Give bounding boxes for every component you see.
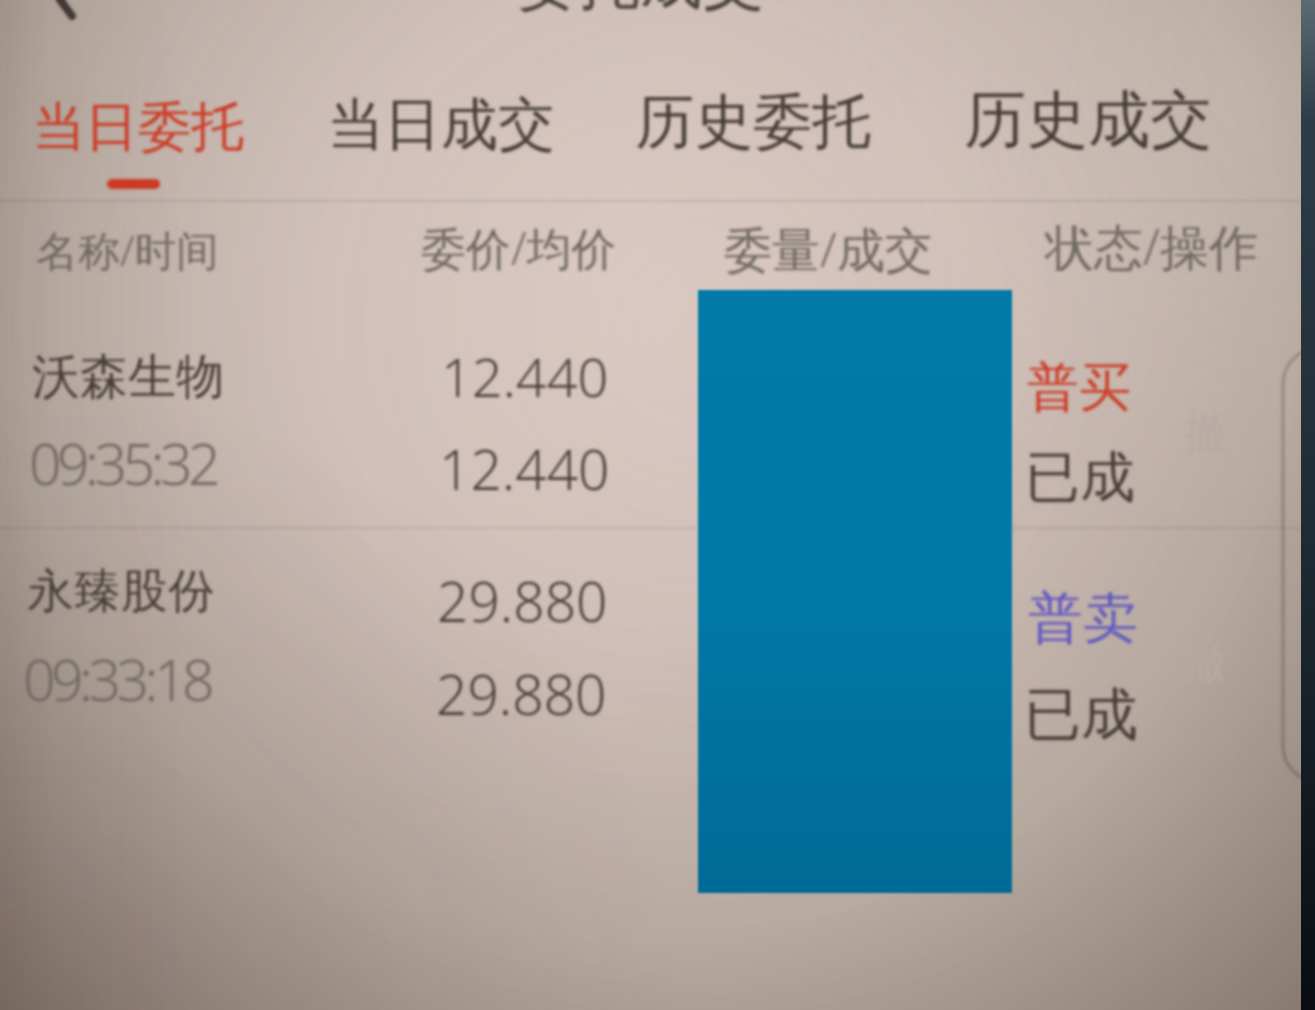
staticText: 29.880 xyxy=(436,656,607,731)
staticText: 沃森生物 xyxy=(32,347,224,407)
staticText: 状态/操作 xyxy=(1045,213,1259,280)
staticText: 委托成交 xyxy=(516,0,764,20)
staticText: 永臻股份 xyxy=(27,562,215,621)
staticText: 09:33:18 xyxy=(23,640,211,718)
button[interactable] xyxy=(0,534,1315,744)
staticText: 当日委托 xyxy=(32,94,244,161)
staticText: 委价/均价 xyxy=(421,217,617,278)
staticText: 历史委托 xyxy=(635,85,871,159)
staticText: 普卖 xyxy=(1028,584,1138,653)
staticText: 已成 xyxy=(1025,443,1135,512)
staticText: 普买 xyxy=(1027,355,1131,421)
staticText: 29.880 xyxy=(437,563,608,638)
staticText: 12.440 xyxy=(439,431,610,506)
staticText: 历史成交 xyxy=(964,81,1212,159)
button[interactable]: 历史委托 xyxy=(617,69,889,174)
staticText: 名称/时间 xyxy=(36,221,219,278)
staticText: 委量/成交 xyxy=(724,216,933,282)
button[interactable]: 当日成交 xyxy=(309,73,573,176)
staticText: 当日成交 xyxy=(327,89,555,161)
button[interactable] xyxy=(0,320,1315,525)
staticText: 12.440 xyxy=(441,339,609,413)
button[interactable]: 当日委托 xyxy=(14,78,262,177)
staticText: 09:35:32 xyxy=(29,424,217,502)
button[interactable]: Back xyxy=(8,0,88,30)
staticText: 已成 xyxy=(1024,679,1138,751)
button[interactable]: 撤 xyxy=(1174,632,1236,694)
button[interactable]: 历史成交 xyxy=(946,66,1230,174)
